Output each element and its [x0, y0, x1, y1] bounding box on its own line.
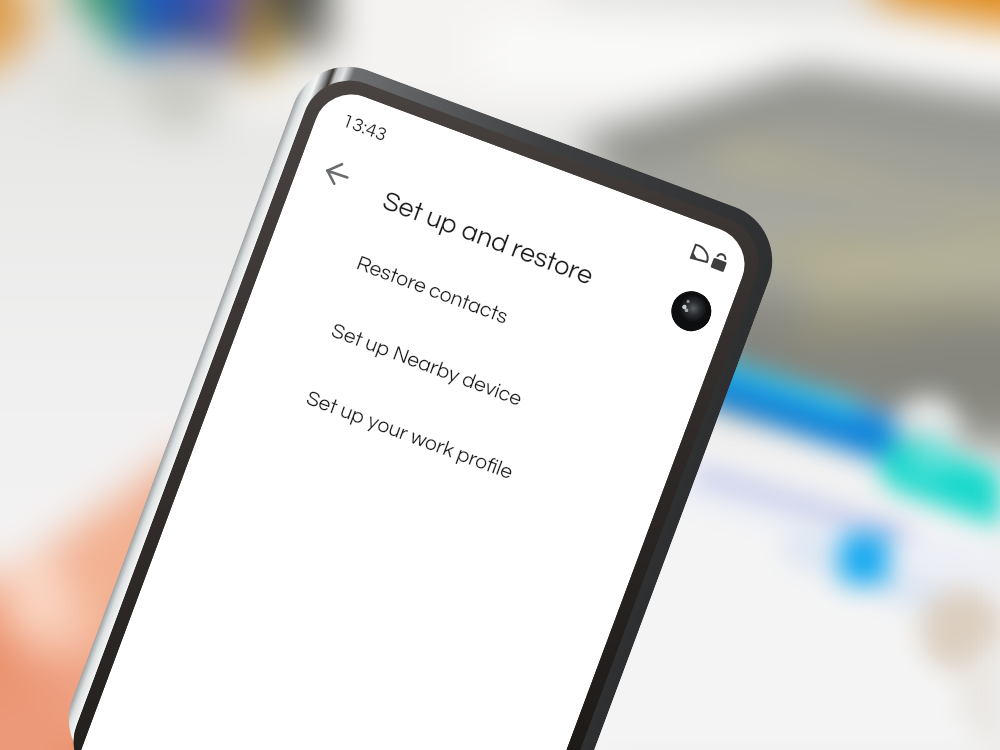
staticText: Set up Nearby device [328, 320, 525, 411]
button[interactable]: Back [309, 145, 366, 203]
staticText: Set up and restore [379, 187, 598, 291]
staticText: Restore contacts [353, 252, 511, 329]
button[interactable]: Restore contacts [265, 209, 709, 413]
staticText: Set up your work profile [303, 387, 516, 484]
staticText: 13:43 [340, 110, 390, 145]
button[interactable]: Set up your work profile [215, 344, 658, 548]
button[interactable]: Set up Nearby device [240, 277, 684, 480]
